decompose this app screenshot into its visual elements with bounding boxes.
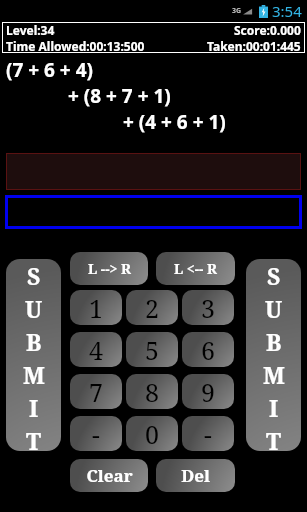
- button[interactable]: 6: [182, 332, 234, 367]
- staticText: 3: [201, 291, 215, 325]
- staticText: L --> R: [88, 259, 131, 278]
- button[interactable]: -: [182, 416, 234, 451]
- button[interactable]: 4: [70, 332, 122, 367]
- staticText: T: [266, 425, 282, 450]
- staticText: M: [23, 359, 45, 390]
- staticText: 2: [145, 291, 159, 325]
- button[interactable]: Clear: [70, 459, 148, 492]
- button[interactable]: 5: [126, 332, 178, 367]
- button[interactable]: 0: [126, 416, 178, 451]
- button[interactable]: S: [246, 259, 301, 451]
- staticText: 0: [145, 417, 159, 451]
- staticText: Time Allowed:00:13:500: [6, 38, 145, 53]
- button[interactable]: Level:34: [2, 22, 305, 53]
- staticText: + (8 + 7 + 1): [68, 83, 171, 109]
- staticText: Taken:00:01:445: [207, 38, 301, 53]
- button[interactable]: [5, 195, 302, 229]
- staticText: 9: [201, 375, 215, 409]
- staticText: L <-- R: [174, 259, 217, 278]
- staticText: 1: [89, 291, 103, 325]
- button[interactable]: -: [70, 416, 122, 451]
- staticText: -: [204, 417, 212, 451]
- button[interactable]: S: [6, 259, 61, 451]
- staticText: Level:34: [6, 22, 55, 38]
- staticText: 6: [201, 333, 215, 367]
- staticText: B: [266, 326, 282, 357]
- staticText: Del: [181, 464, 210, 487]
- staticText: 3G: [232, 6, 242, 16]
- staticText: I: [269, 392, 279, 423]
- staticText: U: [265, 293, 283, 324]
- staticText: 5: [145, 333, 159, 367]
- staticText: S: [27, 260, 41, 291]
- staticText: S: [267, 260, 281, 291]
- staticText: -: [92, 417, 100, 451]
- staticText: B: [26, 326, 42, 357]
- button[interactable]: 3: [182, 290, 234, 325]
- staticText: 4: [89, 333, 103, 367]
- button[interactable]: 2: [126, 290, 178, 325]
- staticText: U: [25, 293, 43, 324]
- button[interactable]: 1: [70, 290, 122, 325]
- staticText: M: [263, 359, 285, 390]
- staticText: 3:54: [272, 1, 302, 21]
- staticText: 8: [145, 375, 159, 409]
- staticText: Score:0.000: [234, 22, 301, 38]
- staticText: I: [29, 392, 39, 423]
- staticText: 7: [89, 375, 103, 409]
- button[interactable]: 9: [182, 374, 234, 409]
- button[interactable]: L --> R: [70, 252, 148, 285]
- staticText: Clear: [86, 464, 133, 487]
- button[interactable]: 7: [70, 374, 122, 409]
- staticText: (7 + 6 + 4): [6, 57, 93, 83]
- button[interactable]: 8: [126, 374, 178, 409]
- button[interactable]: L <-- R: [156, 252, 235, 285]
- staticText: + (4 + 6 + 1): [123, 109, 226, 135]
- button[interactable]: Del: [156, 459, 235, 492]
- staticText: T: [26, 425, 42, 450]
